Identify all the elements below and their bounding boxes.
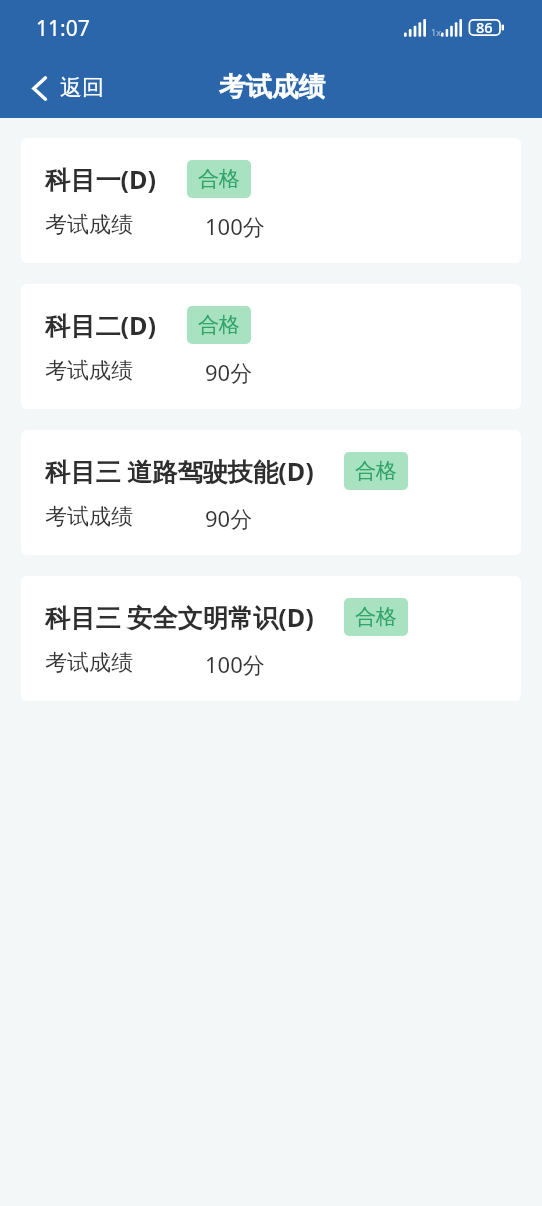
staticText: 考试成绩 [45,211,133,239]
staticText: 86 [476,17,493,37]
other: Back [32,76,47,101]
staticText: 100分 [205,649,265,679]
staticText: 合格 [198,312,240,338]
staticText: 考试成绩 [219,70,325,103]
staticText: 合格 [355,458,397,484]
button[interactable]: 科目二(D) [21,284,521,409]
staticText: 考试成绩 [45,649,133,677]
staticText: 1x [431,26,441,38]
staticText: 11:07 [36,14,90,43]
staticText: 考试成绩 [45,503,133,531]
staticText: 合格 [355,604,397,630]
staticText: 科目一(D) [45,162,157,196]
staticText: 科目二(D) [45,308,157,342]
staticText: 科目三 安全文明常识(D) [45,600,314,634]
staticText: 科目三 道路驾驶技能(D) [45,454,314,488]
staticText: 合格 [198,166,240,192]
staticText: 返回 [60,74,104,102]
button[interactable]: Back [0,66,120,110]
button[interactable]: 科目一(D) [21,138,521,263]
staticText: 考试成绩 [45,357,133,385]
staticText: 90分 [205,503,253,533]
button[interactable]: 科目三 安全文明常识(D) [21,576,521,701]
staticText: 100分 [205,211,265,241]
button[interactable]: 科目三 道路驾驶技能(D) [21,430,521,555]
staticText: 90分 [205,357,253,387]
